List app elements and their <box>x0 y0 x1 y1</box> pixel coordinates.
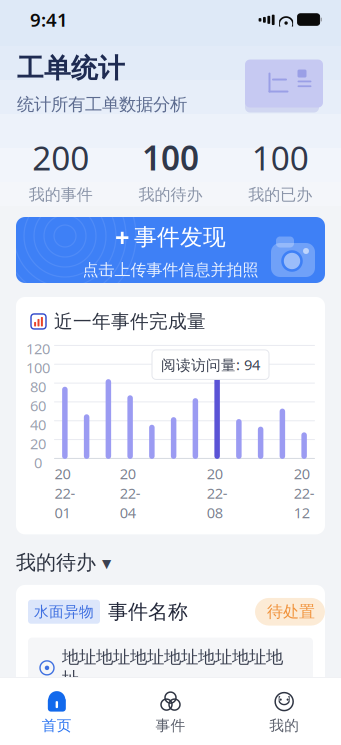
button[interactable]: 事件 <box>114 684 227 742</box>
staticText: 待处置 <box>267 602 315 622</box>
staticText: 9:41 <box>30 7 68 32</box>
button[interactable]: 200 <box>6 131 116 208</box>
staticText: 100 <box>252 135 309 180</box>
staticText: 0 <box>34 453 42 472</box>
staticText: 200 <box>32 135 89 180</box>
staticText: 20 <box>30 434 46 453</box>
staticText: 我的事件 <box>29 185 93 204</box>
staticText: 2022-04 <box>120 464 141 522</box>
staticText: 派发人： <box>28 722 92 741</box>
staticText: 地址地址地址地址地址地址地址 <box>62 647 283 689</box>
button[interactable]: 100 <box>225 131 335 208</box>
staticText: 首页 <box>42 717 72 735</box>
staticText: 近一年事件完成量 <box>54 310 206 333</box>
button[interactable]: 我的 <box>227 684 341 742</box>
staticText: 2020-02-02 12:54:34 <box>227 710 313 745</box>
button[interactable]: 水面异物 <box>0 585 341 745</box>
staticText: 水面异物 <box>34 603 94 621</box>
staticText: 2022-08 <box>207 464 228 522</box>
staticText: + <box>115 220 129 254</box>
staticText: 2022-12 <box>294 464 315 522</box>
staticText: 工单统计 <box>17 52 125 85</box>
staticText: ▼ <box>102 557 111 570</box>
staticText: 100 <box>142 135 199 180</box>
staticText: 事件名称 <box>108 599 188 624</box>
staticText: 我的待办 <box>16 550 96 575</box>
staticText: 事件发现 <box>134 223 226 251</box>
staticText: 阅读访问量: 94 <box>161 355 260 374</box>
button[interactable]: 我的待办 <box>0 534 111 585</box>
staticText: 120 <box>26 339 50 358</box>
staticText: 统计所有工单数据分析 <box>17 94 187 115</box>
staticText: 100 <box>26 358 50 377</box>
staticText: 2022-01 <box>54 464 75 522</box>
button[interactable]: 首页 <box>0 684 114 742</box>
staticText: 60 <box>30 396 46 415</box>
staticText: 我的待办 <box>138 185 202 204</box>
staticText: 40 <box>30 415 46 434</box>
staticText: 点击上传事件信息并拍照 <box>82 260 258 280</box>
staticText: 事件 <box>155 717 185 735</box>
staticText: 80 <box>30 377 46 396</box>
button[interactable]: + <box>0 206 341 283</box>
staticText: 我的 <box>269 717 299 735</box>
staticText: 派发时间： <box>147 722 227 741</box>
staticText: 我的已办 <box>248 185 312 204</box>
button[interactable]: 100 <box>116 131 225 208</box>
